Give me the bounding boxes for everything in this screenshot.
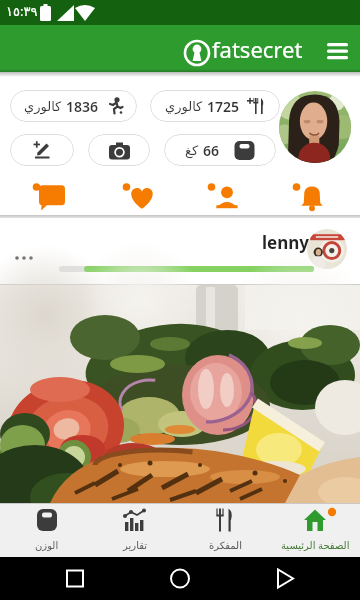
button[interactable]: كالوري: [10, 90, 137, 122]
button[interactable]: [275, 180, 345, 214]
button[interactable]: كغ: [164, 134, 276, 166]
button[interactable]: المفكرة: [180, 503, 270, 557]
staticText: كالوري: [24, 99, 62, 114]
staticText: كغ: [185, 143, 199, 158]
button[interactable]: [0, 285, 360, 503]
button[interactable]: [190, 180, 260, 214]
staticText: 66: [203, 141, 220, 160]
button[interactable]: تقارير: [90, 503, 180, 557]
button[interactable]: [105, 180, 175, 214]
staticText: كالوري: [165, 99, 203, 114]
staticText: المفكرة: [209, 540, 242, 552]
staticText: الوزن: [35, 540, 59, 552]
button[interactable]: [15, 180, 85, 214]
button[interactable]: كالوري: [150, 90, 280, 122]
staticText: الصفحة الرئيسية: [281, 538, 350, 552]
staticText: lenny: [262, 231, 310, 254]
button[interactable]: [279, 91, 351, 163]
staticText: ١٥:٣٩: [6, 2, 38, 20]
button[interactable]: [88, 134, 150, 166]
button[interactable]: الصفحة الرئيسية: [270, 503, 360, 557]
staticText: 1836: [66, 97, 99, 116]
button[interactable]: [10, 134, 74, 166]
staticText: 1725: [207, 97, 240, 116]
button[interactable]: lenny: [0, 218, 360, 284]
button[interactable]: الوزن: [2, 503, 92, 557]
staticText: fatsecret: [212, 34, 303, 64]
staticText: تقارير: [123, 540, 148, 552]
